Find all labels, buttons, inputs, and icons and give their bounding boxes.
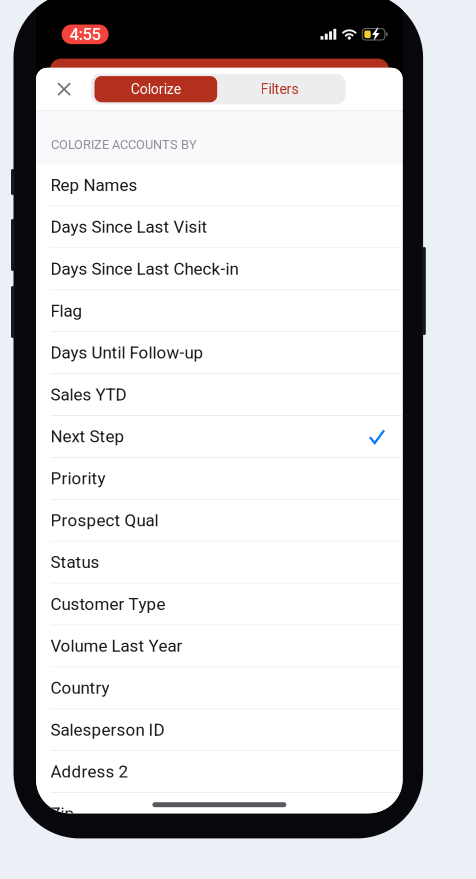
staticText: Prospect Qual bbox=[51, 510, 159, 530]
staticText: Flag bbox=[51, 301, 83, 321]
button[interactable]: Sales YTD bbox=[36, 374, 403, 416]
staticText: Days Since Last Check-in bbox=[51, 259, 239, 279]
button[interactable]: Rep Names bbox=[36, 165, 403, 206]
button[interactable]: Status bbox=[36, 542, 403, 584]
button[interactable]: Flag bbox=[36, 290, 403, 332]
button[interactable]: Colorize bbox=[94, 76, 217, 102]
staticText: Salesperson ID bbox=[51, 720, 165, 740]
button[interactable]: Filters bbox=[217, 76, 342, 102]
button[interactable]: Country bbox=[36, 667, 403, 709]
button[interactable]: Close bbox=[46, 68, 82, 110]
button[interactable]: Volume Last Year bbox=[36, 625, 403, 667]
staticText: Priority bbox=[51, 468, 106, 488]
staticText: Colorize bbox=[131, 81, 181, 97]
staticText: Address 2 bbox=[51, 762, 129, 782]
button[interactable]: Priority bbox=[36, 458, 403, 500]
staticText: COLORIZE ACCOUNTS BY bbox=[51, 137, 197, 152]
staticText: Zip bbox=[51, 804, 75, 823]
staticText: Status bbox=[51, 552, 100, 572]
staticText: 4:55 bbox=[70, 24, 101, 44]
button[interactable]: Zip bbox=[36, 793, 403, 835]
staticText: Days Until Follow-up bbox=[51, 343, 204, 363]
button[interactable]: Salesperson ID bbox=[36, 709, 403, 751]
button[interactable]: Days Since Last Visit bbox=[36, 206, 403, 248]
staticText: Customer Type bbox=[51, 594, 166, 614]
staticText: Filters bbox=[261, 81, 299, 97]
button[interactable]: Customer Type bbox=[36, 584, 403, 625]
staticText: Next Step bbox=[51, 427, 125, 446]
staticText: Sales YTD bbox=[51, 385, 127, 404]
staticText: Country bbox=[51, 678, 110, 698]
button[interactable]: Days Until Follow-up bbox=[36, 332, 403, 374]
button[interactable]: Next Step bbox=[36, 416, 403, 458]
button[interactable]: Prospect Qual bbox=[36, 500, 403, 542]
button[interactable]: Days Since Last Check-in bbox=[36, 248, 403, 290]
staticText: Volume Last Year bbox=[51, 636, 183, 656]
staticText: Days Since Last Visit bbox=[51, 217, 208, 237]
staticText: Rep Names bbox=[51, 175, 138, 195]
button[interactable]: Address 2 bbox=[36, 751, 403, 793]
